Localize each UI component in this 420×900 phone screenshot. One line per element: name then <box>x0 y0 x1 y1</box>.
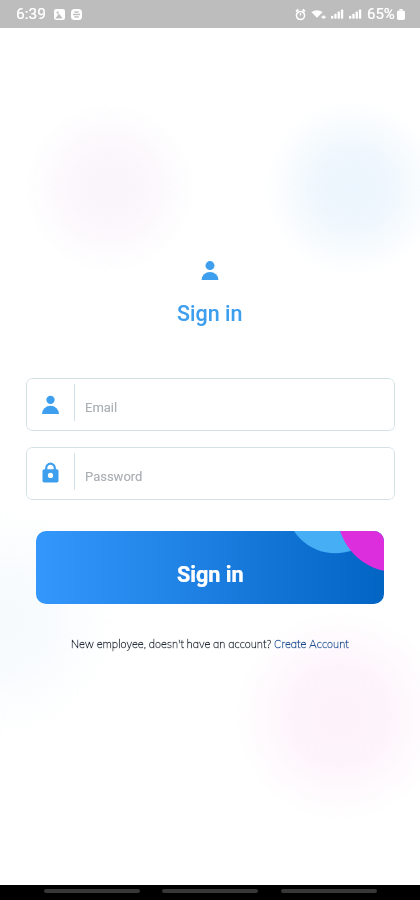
button[interactable]: Create Account <box>274 637 349 651</box>
staticText: Password <box>85 469 143 484</box>
button[interactable]: Back <box>44 889 140 893</box>
staticText: 6:39 <box>16 5 46 23</box>
staticText: Sign in <box>177 562 244 587</box>
staticText: Create Account <box>274 637 349 651</box>
staticText: Email <box>85 400 118 415</box>
button[interactable]: Home <box>162 889 258 893</box>
staticText: Sign in <box>177 301 243 326</box>
staticText: 65% <box>367 5 395 23</box>
button[interactable]: Email <box>26 378 395 431</box>
button[interactable]: Recent apps <box>281 889 377 893</box>
button[interactable]: Sign in <box>36 531 384 604</box>
button[interactable]: Password <box>26 447 395 500</box>
staticText: New employee, doesn't have an account? <box>71 637 274 651</box>
